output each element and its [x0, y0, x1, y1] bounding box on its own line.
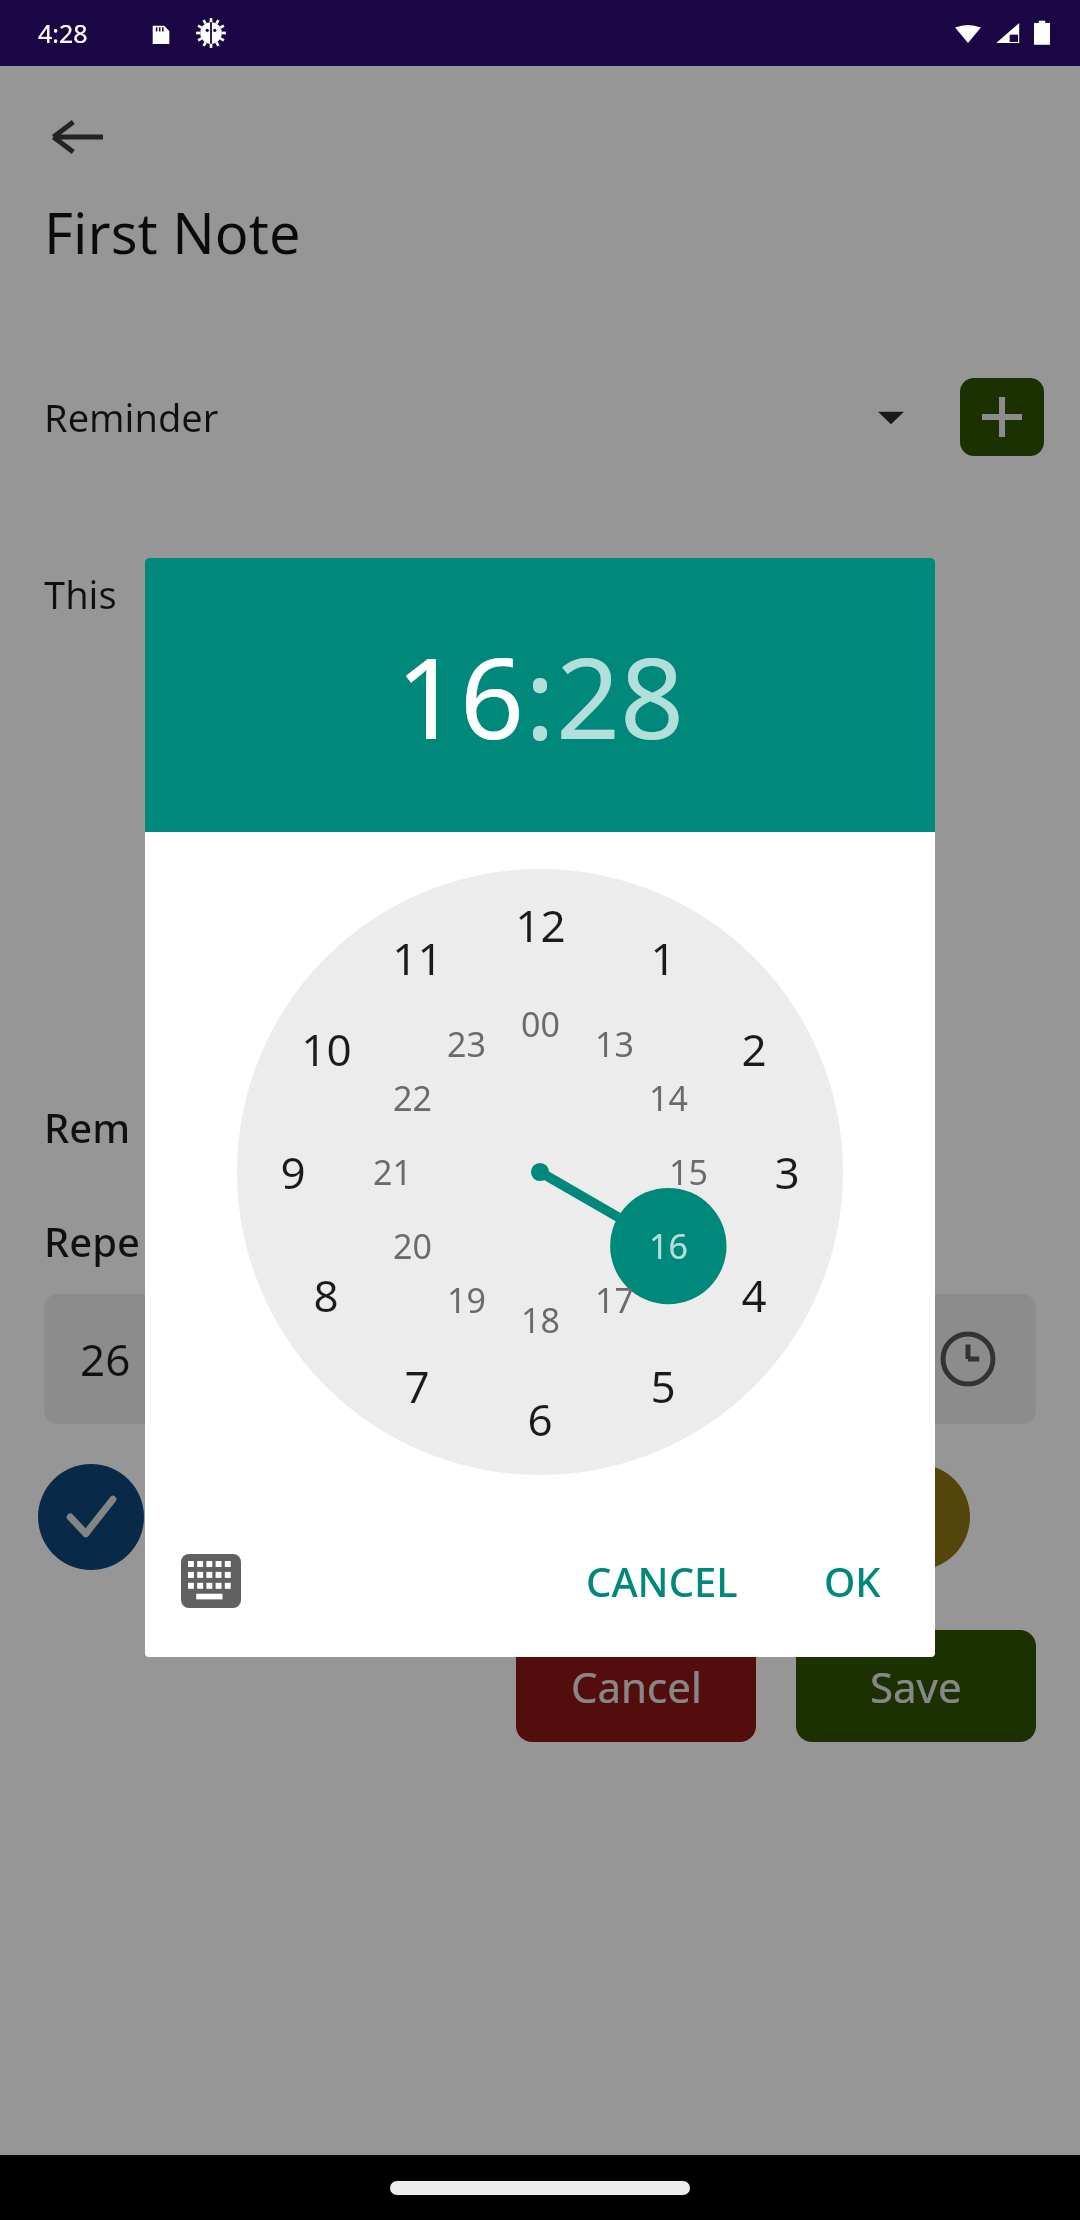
button[interactable]: 17 — [571, 1257, 657, 1343]
staticText: 3 — [774, 1142, 800, 1202]
staticText: 19 — [447, 1277, 486, 1323]
button[interactable]: Switch to keyboard input — [181, 1554, 241, 1608]
staticText: Rem — [44, 1100, 131, 1154]
button[interactable]: 23 — [423, 1001, 509, 1087]
staticText: 1 — [650, 928, 676, 988]
staticText: First Note — [44, 194, 301, 270]
button[interactable]: Color 1 — [156, 1464, 262, 1570]
button[interactable]: 7 — [374, 1343, 460, 1429]
staticText: 22 — [393, 1075, 432, 1121]
button[interactable]: 18 — [497, 1277, 583, 1363]
button[interactable]: 5 — [620, 1343, 706, 1429]
button[interactable]: 14 — [625, 1055, 711, 1141]
staticText: Cancel — [571, 1658, 702, 1715]
staticText: Reminder — [44, 391, 219, 443]
staticText: : — [525, 619, 556, 772]
button[interactable]: CANCEL — [568, 1540, 756, 1622]
staticText: 17 — [595, 1277, 634, 1323]
button[interactable]: Color 4 — [510, 1464, 616, 1570]
button[interactable]: 16 — [396, 619, 525, 772]
staticText: 4 — [741, 1265, 767, 1325]
staticText: 14 — [649, 1075, 688, 1121]
staticText: 20 — [393, 1223, 432, 1269]
staticText: 13 — [595, 1021, 634, 1067]
staticText: Save — [870, 1658, 962, 1715]
button[interactable]: 21 — [349, 1129, 435, 1215]
button[interactable]: Cancel — [516, 1630, 756, 1742]
staticText: 6 — [527, 1389, 553, 1449]
staticText: 00 — [521, 1001, 560, 1047]
staticText: 21 — [373, 1149, 412, 1195]
staticText: 10 — [301, 1019, 352, 1079]
button[interactable]: 28 — [556, 619, 685, 772]
button[interactable]: 9 — [250, 1129, 336, 1215]
staticText: 26 — [80, 1329, 131, 1389]
staticText: CANCEL — [586, 1554, 738, 1608]
button[interactable]: Save — [796, 1630, 1036, 1742]
button[interactable]: Color 5 — [628, 1464, 734, 1570]
button[interactable]: 3 — [744, 1129, 830, 1215]
button[interactable]: Color 7 — [864, 1464, 970, 1570]
button[interactable]: 00 — [497, 981, 583, 1067]
staticText: 9 — [280, 1142, 306, 1202]
staticText: 12 — [515, 895, 566, 955]
staticText: 16 — [649, 1223, 688, 1269]
button[interactable]: 20 — [369, 1203, 455, 1289]
staticText: 11 — [392, 928, 443, 988]
button[interactable]: 1 — [620, 915, 706, 1001]
button[interactable]: OK — [806, 1540, 899, 1622]
button[interactable]: 6 — [497, 1376, 583, 1462]
button[interactable]: Back — [46, 106, 108, 168]
staticText: 5 — [650, 1356, 676, 1416]
staticText: 23 — [447, 1021, 486, 1067]
staticText: Repe — [44, 1214, 140, 1268]
button[interactable]: 8 — [283, 1252, 369, 1338]
button[interactable]: Color 6 — [746, 1464, 852, 1570]
staticText: This — [44, 568, 117, 620]
button[interactable]: Color 0 — [38, 1464, 144, 1570]
button[interactable]: 11 — [374, 915, 460, 1001]
button[interactable]: 4 — [711, 1252, 797, 1338]
button[interactable]: 19 — [423, 1257, 509, 1343]
staticText: 7 — [404, 1356, 430, 1416]
staticText: OK — [824, 1554, 881, 1608]
staticText: 15 — [669, 1149, 708, 1195]
button[interactable]: 13 — [571, 1001, 657, 1087]
staticText: 2 — [741, 1019, 767, 1079]
button[interactable]: Add — [960, 378, 1044, 456]
button[interactable]: 26 — [44, 1294, 1036, 1424]
staticText: 8 — [313, 1265, 339, 1325]
button[interactable]: 22 — [369, 1055, 455, 1141]
button[interactable]: 12 — [497, 882, 583, 968]
staticText: 18 — [521, 1297, 560, 1343]
button[interactable]: 10 — [283, 1006, 369, 1092]
staticText: 4:28 — [38, 16, 88, 50]
button[interactable]: 15 — [645, 1129, 731, 1215]
button[interactable]: 2 — [711, 1006, 797, 1092]
button[interactable]: 16 — [625, 1203, 711, 1289]
